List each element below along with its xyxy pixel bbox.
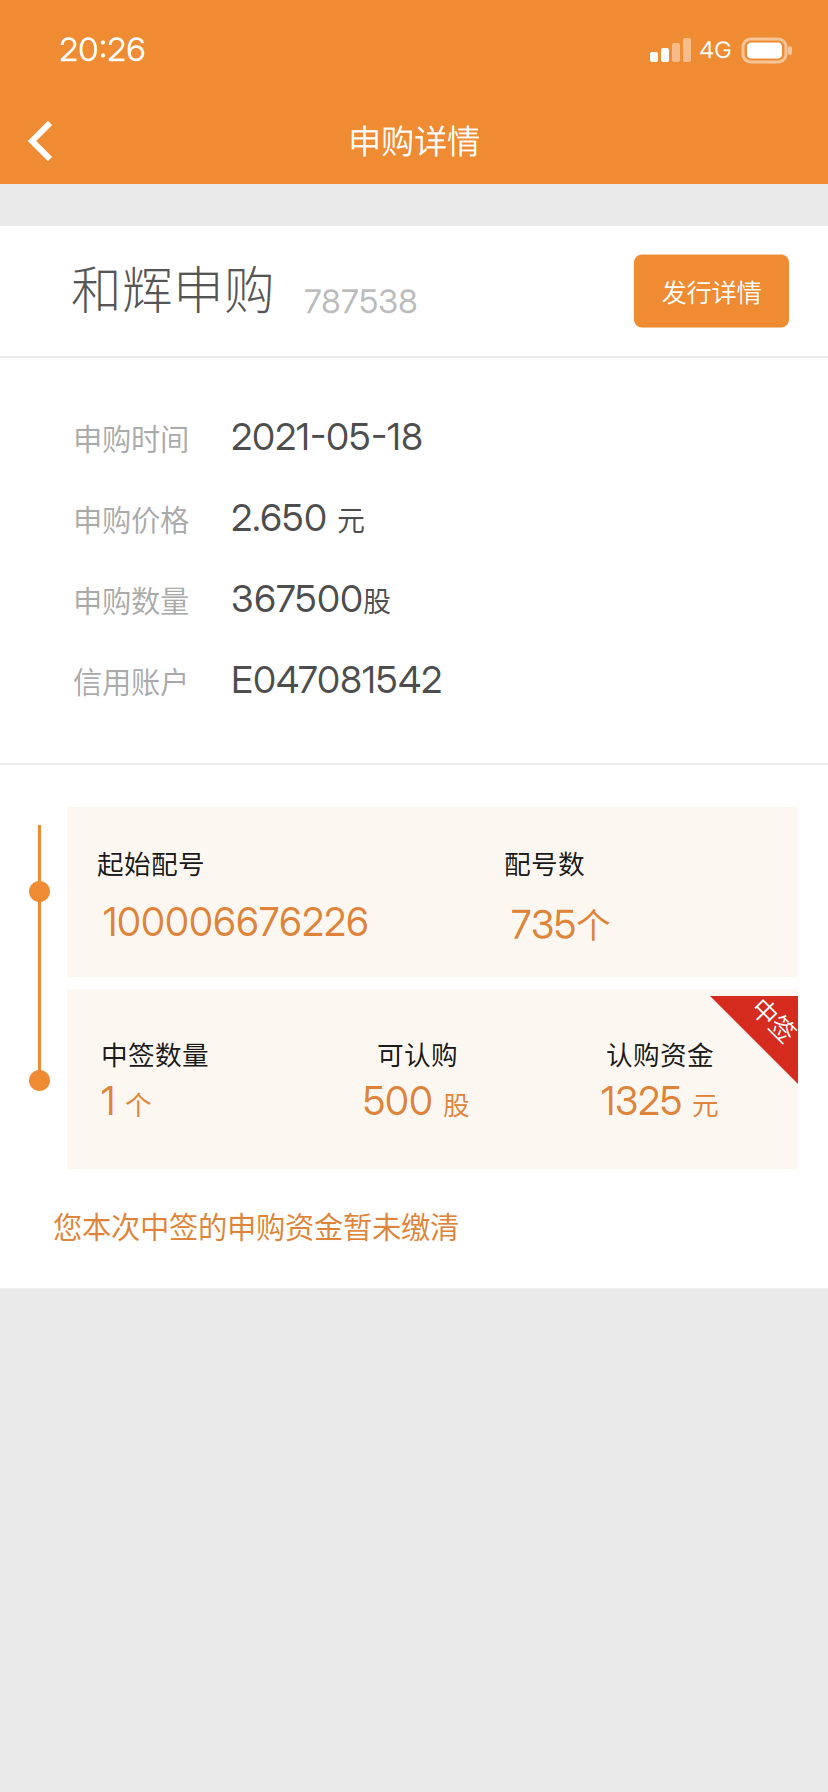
staticText: 发行详情 [661, 273, 761, 309]
staticText: 申购时间 [73, 416, 189, 459]
staticText: 500 [363, 1078, 433, 1124]
staticText: 申购数量 [73, 578, 189, 621]
staticText: 起始配号 [97, 843, 205, 882]
staticText: 中签 [750, 1001, 800, 1037]
staticText: 您本次中签的申购资金暂未缴清 [53, 1204, 459, 1246]
staticText: 2021-05-18 [231, 414, 423, 459]
staticText: 申购详情 [348, 115, 480, 163]
staticText: 4G [699, 35, 732, 64]
staticText: 和辉申购 [71, 250, 275, 324]
staticText: 信用账户 [73, 659, 189, 702]
staticText: 配号数 [504, 843, 585, 882]
staticText: 个 [576, 899, 611, 949]
staticText: 股 [443, 1084, 470, 1123]
staticText: 1 [101, 1078, 115, 1124]
staticText: 中签数量 [101, 1034, 209, 1073]
staticText: 367500 [231, 576, 363, 621]
button[interactable]: 发行详情 [634, 254, 789, 327]
staticText: E047081542 [231, 657, 442, 702]
staticText: 100006676226 [103, 899, 369, 945]
staticText: 元 [337, 499, 365, 539]
staticText: 20:26 [59, 29, 146, 69]
staticText: 735 [511, 901, 576, 948]
staticText: 认购资金 [606, 1034, 714, 1073]
button[interactable]: Back [0, 88, 82, 184]
staticText: 787538 [304, 281, 418, 321]
staticText: 元 [692, 1084, 719, 1123]
staticText: 1325 [601, 1078, 682, 1124]
staticText: 可认购 [377, 1034, 458, 1073]
staticText: 股 [363, 580, 391, 620]
staticText: 个 [125, 1084, 152, 1123]
staticText: 2.650 [231, 495, 327, 540]
staticText: 申购价格 [73, 497, 189, 540]
